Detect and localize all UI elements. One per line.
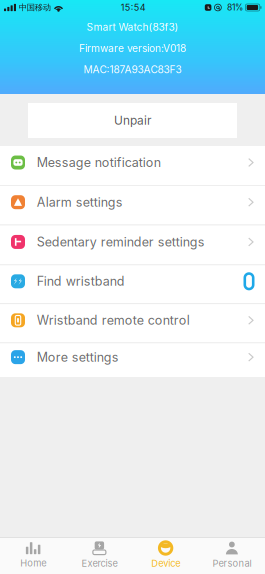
staticText: Sedentary reminder settings	[37, 234, 205, 250]
button[interactable]: Home	[0, 538, 66, 574]
button[interactable]: Sedentary reminder settings	[0, 225, 265, 264]
staticText: Exercise	[81, 558, 117, 569]
staticText: More settings	[37, 350, 119, 365]
staticText: Home	[20, 557, 46, 569]
button[interactable]: Alarm settings	[0, 186, 265, 225]
staticText: Smart Watch(83f3)	[86, 21, 178, 33]
staticText: Find wristband	[37, 274, 125, 289]
staticText: Wristband remote control	[37, 313, 190, 328]
button[interactable]: Device	[132, 538, 199, 574]
button[interactable]: Exercise	[66, 538, 132, 574]
button[interactable]: Message notification	[0, 146, 265, 185]
staticText: 中国移动	[19, 2, 51, 13]
button[interactable]: Find wristband	[0, 265, 265, 303]
button[interactable]: More settings	[0, 343, 265, 377]
staticText: Message notification	[37, 155, 161, 170]
staticText: MAC:187A93AC83F3	[83, 63, 181, 76]
button[interactable]: Wristband remote control	[0, 304, 265, 342]
staticText: Device	[151, 558, 180, 569]
staticText: Firmware version:V018	[79, 42, 186, 55]
staticText: Unpair	[114, 113, 151, 128]
button[interactable]: Personal	[199, 538, 265, 574]
button[interactable]: Unpair	[28, 103, 237, 138]
staticText: 15:54	[121, 2, 146, 13]
staticText: 81%	[227, 2, 243, 13]
staticText: Alarm settings	[37, 195, 123, 210]
staticText: Personal	[212, 558, 251, 569]
